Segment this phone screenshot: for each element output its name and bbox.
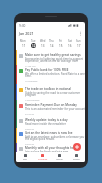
button[interactable]: Sat xyxy=(65,37,74,50)
staticText: We offer a limited selection. Fixed Rate… xyxy=(25,72,85,78)
staticText: Thu xyxy=(49,39,54,43)
staticText: Day xyxy=(23,158,27,161)
button[interactable]: More options xyxy=(79,31,82,36)
button[interactable]: Fri xyxy=(56,37,65,50)
button[interactable]: Sun xyxy=(74,37,83,50)
button[interactable]: Get an the latest news is now live xyxy=(16,128,85,143)
staticText: 11:50 AM xyxy=(25,64,36,67)
button[interactable]: Create event xyxy=(73,143,81,151)
staticText: Monthly with all your thoughts here xyxy=(25,146,77,150)
staticText: 17 xyxy=(77,44,81,48)
staticText: Pay Public bank for 100% FREE xyxy=(25,68,69,72)
staticText: Weekly update: today is a day xyxy=(25,118,68,122)
staticText: Sun xyxy=(76,39,81,43)
button[interactable]: The trade on toolbox in national xyxy=(16,84,85,100)
staticText: Jan 2021 xyxy=(19,31,34,36)
button[interactable]: Monthly with all your thoughts here xyxy=(16,143,85,154)
staticText: 5:40 PM xyxy=(25,155,34,157)
staticText: Schedule xyxy=(38,158,48,161)
staticText: 12 Tuesday xyxy=(25,79,38,82)
staticText: Make sure to get healthy great savings xyxy=(25,53,81,57)
staticText: Join a place for fresh and nice new xyxy=(25,150,69,154)
button[interactable]: Weekly update: today is a day xyxy=(16,115,85,128)
staticText: Month xyxy=(56,158,63,161)
button[interactable]: Day xyxy=(16,152,34,162)
staticText: Accessories to lightning quick time to s… xyxy=(25,57,85,63)
staticText: 15 xyxy=(59,44,63,48)
staticText: Fri xyxy=(59,39,63,43)
staticText: 13 xyxy=(41,44,45,48)
staticText: Add to an envelope, subscribers or brows… xyxy=(25,135,85,141)
button[interactable]: Search xyxy=(68,152,85,162)
staticText: Tue xyxy=(31,39,36,43)
button[interactable]: Pay Public bank for 100% FREE xyxy=(16,65,85,84)
staticText: 12 xyxy=(32,44,36,48)
staticText: 16 xyxy=(68,44,72,48)
button[interactable]: Schedule xyxy=(34,152,51,162)
staticText: Guide to saving the road to a new custom… xyxy=(25,91,85,97)
staticText: Wed xyxy=(40,39,46,43)
staticText: 2:10 PM xyxy=(25,112,34,115)
staticText: Read more inside the newsletter xyxy=(25,122,66,126)
staticText: 14 xyxy=(50,44,54,48)
button[interactable]: Thu xyxy=(47,37,56,50)
button[interactable]: Make sure to get healthy great savings xyxy=(16,50,85,65)
staticText: 9:30 xyxy=(19,24,26,28)
button[interactable]: Reminder: Payment Due on Monday xyxy=(16,100,85,115)
staticText: This is an automated reminder for your a… xyxy=(25,107,85,111)
staticText: Reminder: Payment Due on Monday xyxy=(25,103,77,107)
button[interactable]: Mon xyxy=(18,37,28,50)
button[interactable]: Month xyxy=(51,152,68,162)
button[interactable]: Wed xyxy=(38,37,47,50)
staticText: Mon xyxy=(20,39,26,43)
staticText: 1:30 Tuesday xyxy=(25,98,40,101)
staticText: 4:25 PM xyxy=(25,142,34,145)
staticText: Get an the latest news is now live xyxy=(25,131,73,135)
button[interactable]: Tue xyxy=(28,37,38,50)
staticText: 11 xyxy=(22,44,26,48)
staticText: Search xyxy=(73,158,80,161)
staticText: Sat xyxy=(68,39,72,43)
staticText: The trade on toolbox in national xyxy=(25,87,71,91)
staticText: 3:00 PM xyxy=(25,127,34,130)
